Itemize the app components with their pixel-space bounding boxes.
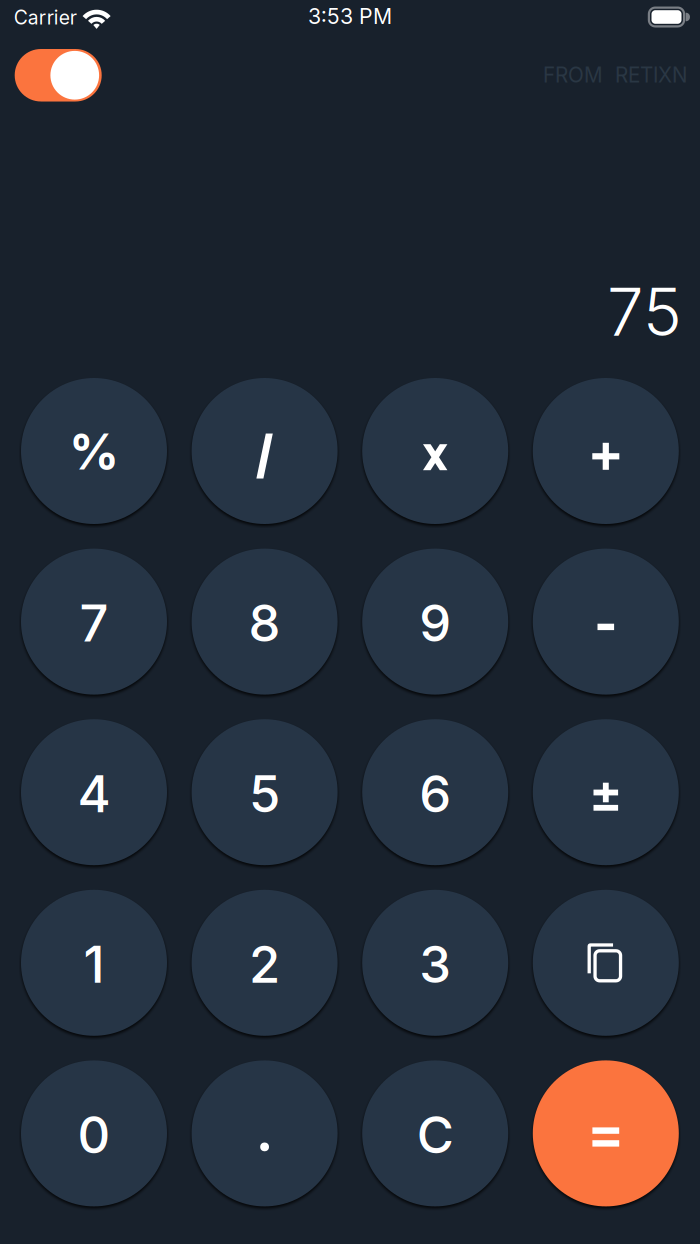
staticText: 75 — [607, 272, 682, 351]
staticText: 9 — [419, 592, 451, 654]
staticText: 3 — [419, 934, 451, 995]
button[interactable]: Multiply — [362, 378, 508, 524]
button[interactable]: Toggle sign — [533, 719, 679, 865]
staticText: 1 — [83, 934, 104, 995]
staticText: FROM RETIXN — [543, 62, 688, 87]
staticText: 2 — [249, 934, 280, 995]
button[interactable]: Add — [533, 378, 679, 524]
button[interactable]: 7 — [21, 549, 167, 695]
button[interactable]: 1 — [21, 890, 167, 1036]
button[interactable]: 0 — [21, 1060, 167, 1206]
button[interactable]: C — [362, 1060, 508, 1206]
button[interactable]: 6 — [362, 719, 508, 865]
button[interactable]: Subtract — [533, 549, 679, 695]
button[interactable]: Equals — [533, 1060, 679, 1206]
staticText: 8 — [249, 592, 281, 654]
button[interactable]: % — [21, 378, 167, 524]
button[interactable]: 5 — [192, 719, 338, 865]
button[interactable]: 2 — [192, 890, 338, 1036]
staticText: % — [69, 422, 119, 481]
staticText: 3:53 PM — [308, 3, 392, 29]
button[interactable]: 9 — [362, 549, 508, 695]
button[interactable]: 8 — [192, 549, 338, 695]
button[interactable]: 4 — [21, 719, 167, 865]
button[interactable]: Theme toggle — [15, 49, 102, 101]
staticText: 6 — [419, 763, 451, 824]
button[interactable]: Decimal point — [192, 1060, 338, 1206]
button[interactable]: Divide — [192, 378, 338, 524]
staticText: 0 — [77, 1104, 110, 1165]
staticText: C — [417, 1104, 454, 1165]
staticText: 5 — [249, 763, 280, 824]
staticText: 4 — [77, 763, 110, 824]
staticText: 7 — [79, 592, 108, 654]
staticText: Carrier — [14, 6, 77, 29]
button[interactable]: 3 — [362, 890, 508, 1036]
button[interactable]: Copy result — [533, 890, 679, 1036]
